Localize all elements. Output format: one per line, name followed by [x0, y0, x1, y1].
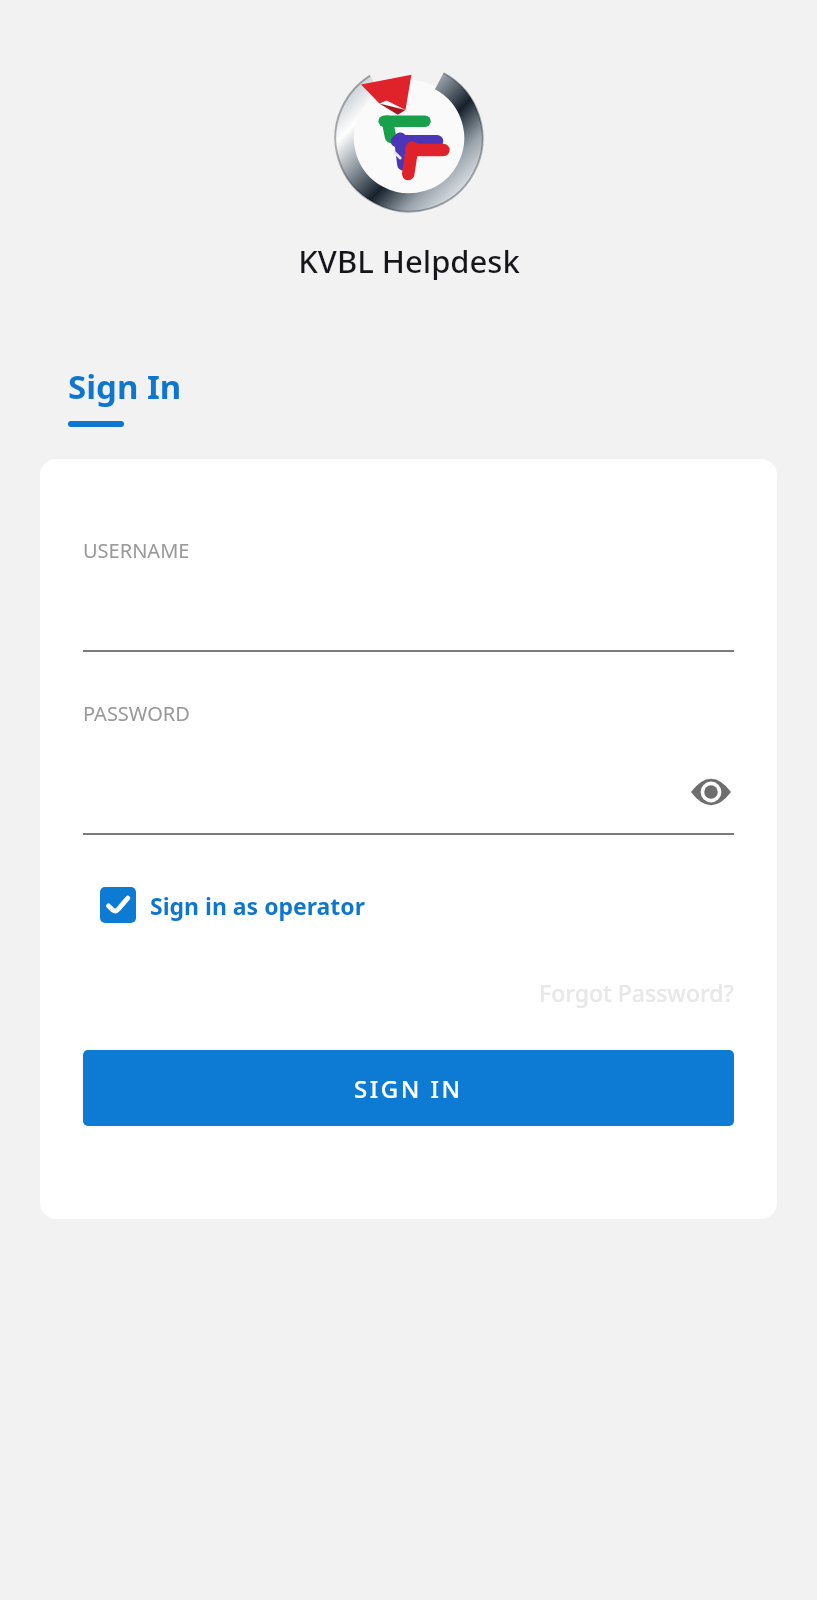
button[interactable]: Sign in as operator: [100, 887, 366, 923]
staticText: Sign in as operator: [150, 890, 366, 921]
staticText: PASSWORD: [83, 700, 190, 727]
button[interactable]: Show password: [688, 769, 734, 815]
button[interactable]: SIGN IN: [83, 1050, 734, 1126]
staticText: Forgot Password?: [539, 977, 734, 1008]
staticText: USERNAME: [83, 537, 190, 564]
button[interactable]: Forgot Password?: [539, 977, 734, 1008]
staticText: KVBL Helpdesk: [298, 240, 520, 282]
staticText: Sign In: [68, 364, 182, 409]
staticText: SIGN IN: [354, 1072, 463, 1105]
